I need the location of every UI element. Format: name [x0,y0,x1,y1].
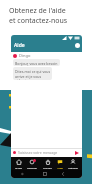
staticText: Dingo [19,53,31,58]
staticText: PANIER [43,166,52,169]
staticText: AIDE [57,166,63,169]
button[interactable]: COMPTE [67,159,79,169]
staticText: ALLER [15,166,22,169]
staticText: Obtenez de l'aide [9,6,66,16]
button[interactable]: ALLER [14,159,23,169]
button[interactable]: AIDE [56,159,64,169]
staticText: COMPTE [68,166,78,169]
button[interactable]: Saisissez votre message [13,148,79,157]
staticText: Aide [14,42,25,49]
staticText: Saisissez votre message [18,150,58,155]
button[interactable]: Fermer [75,43,80,48]
staticText: et contactez-nous [9,16,68,26]
button[interactable]: FAVORIS [26,159,38,169]
button[interactable]: Envoyer [75,151,79,155]
staticText: Dites-moi ce qui vous arrive et je vous … [15,69,52,80]
staticText: FAVORIS [27,166,37,169]
staticText: Bonjour, vous avez besoin d'aide ? [15,61,60,66]
button[interactable]: PANIER [42,159,53,169]
